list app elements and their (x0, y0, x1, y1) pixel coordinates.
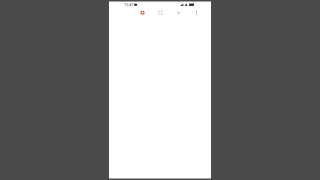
button[interactable]: Grid (156, 8, 165, 17)
button[interactable]: Sparkle (174, 8, 183, 17)
button[interactable]: App (138, 8, 147, 17)
button[interactable]: More (192, 8, 201, 17)
staticText: 11:47 (124, 2, 133, 7)
